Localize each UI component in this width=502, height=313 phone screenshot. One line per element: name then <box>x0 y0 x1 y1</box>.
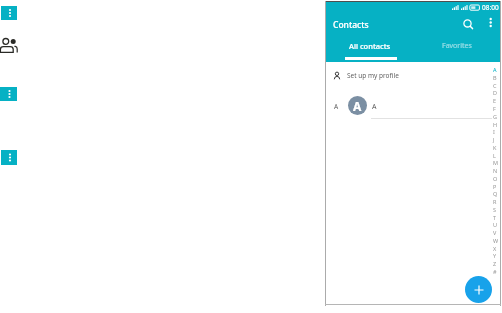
button[interactable] <box>1 6 17 20</box>
button[interactable] <box>0 87 17 101</box>
staticText: Q <box>493 190 498 197</box>
button[interactable]: A <box>345 93 492 119</box>
staticText: Favorites <box>442 41 472 51</box>
staticText: Z <box>493 260 497 267</box>
staticText: P <box>493 183 497 190</box>
staticText: All contacts <box>349 41 391 51</box>
staticText: A <box>334 102 339 111</box>
staticText: S <box>493 206 497 213</box>
staticText: I <box>493 128 495 135</box>
staticText: A <box>372 102 377 112</box>
staticText: R <box>493 198 497 205</box>
staticText: Set up my profile <box>347 71 399 80</box>
button[interactable]: Set up my profile <box>326 63 492 88</box>
staticText: B <box>493 74 497 81</box>
staticText: T <box>493 214 497 221</box>
button[interactable] <box>1 150 17 165</box>
button[interactable] <box>460 16 476 32</box>
staticText: 08:00 <box>482 3 499 12</box>
staticText: F <box>493 105 496 112</box>
staticText: Y <box>493 252 497 259</box>
staticText: E <box>493 97 497 104</box>
staticText: L <box>493 152 496 159</box>
button[interactable] <box>485 15 497 32</box>
staticText: A <box>493 66 497 73</box>
staticText: M <box>493 159 498 166</box>
staticText: C <box>493 82 497 89</box>
button[interactable]: All contacts <box>326 34 413 57</box>
staticText: K <box>493 144 497 151</box>
staticText: G <box>493 113 498 120</box>
staticText: Contacts <box>333 19 369 31</box>
staticText: V <box>493 229 497 236</box>
staticText: A <box>353 98 362 114</box>
staticText: X <box>493 245 497 252</box>
staticText: N <box>493 167 498 174</box>
staticText: H <box>493 121 498 128</box>
staticText: # <box>493 268 497 275</box>
staticText: D <box>493 89 498 96</box>
button[interactable] <box>465 276 492 303</box>
staticText: W <box>493 237 499 244</box>
staticText: J <box>493 136 495 143</box>
staticText: U <box>493 221 498 228</box>
staticText: O <box>493 175 498 182</box>
button[interactable]: Favorites <box>413 34 500 57</box>
